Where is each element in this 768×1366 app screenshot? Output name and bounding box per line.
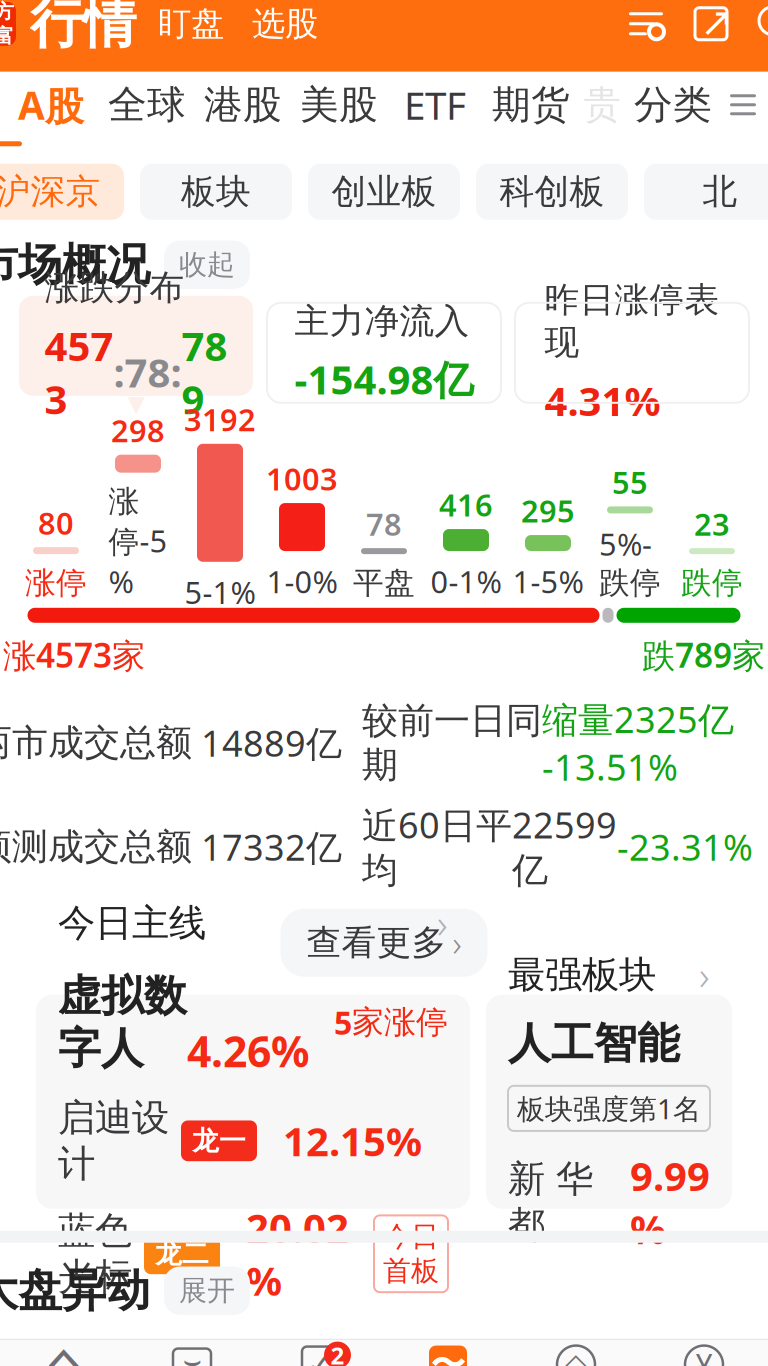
- staticText: 涨停: [25, 564, 87, 602]
- button[interactable]: 昨日涨停表现: [515, 303, 749, 403]
- staticText: 近60日平均: [362, 801, 512, 893]
- staticText: ▾: [127, 383, 144, 422]
- staticText: 78: [366, 503, 402, 544]
- button[interactable]: 板块: [140, 164, 292, 220]
- staticText: ¥: [695, 1343, 713, 1366]
- staticText: 1-0%: [266, 561, 337, 602]
- staticText: 295: [521, 490, 575, 531]
- staticText: 4.26%: [187, 966, 309, 1079]
- button[interactable]: 科创板: [476, 164, 628, 220]
- staticText: 9.99%: [630, 1149, 710, 1255]
- staticText: :: [113, 345, 124, 399]
- button[interactable]: 选股: [242, 0, 328, 50]
- button[interactable]: 沪深京: [0, 164, 124, 220]
- button[interactable]: 港股: [195, 80, 291, 130]
- staticText: ◇: [563, 1346, 588, 1366]
- staticText: 启迪设计: [58, 1095, 169, 1187]
- staticText: 缩量2325亿 -13.51%: [542, 695, 743, 791]
- staticText: 较前一日同期: [362, 699, 542, 787]
- button[interactable]: ⌣: [128, 1340, 256, 1366]
- button[interactable]: ETF: [387, 80, 483, 130]
- staticText: 选股: [252, 3, 318, 44]
- staticText: 78: [124, 345, 170, 399]
- button[interactable]: Filter settings: [626, 4, 666, 44]
- staticText: 80: [38, 502, 74, 543]
- staticText: :: [170, 345, 181, 399]
- staticText: 家涨停: [352, 1003, 448, 1042]
- staticText: ↗: [700, 0, 734, 44]
- staticText: 板块强度第1名: [517, 1090, 701, 1127]
- staticText: 2: [330, 1339, 344, 1366]
- button[interactable]: ◇: [512, 1340, 640, 1366]
- button[interactable]: Share: [666, 5, 730, 43]
- staticText: 新 华 都: [508, 1156, 593, 1248]
- staticText: 市场概况: [0, 238, 150, 292]
- staticText: 港股: [204, 81, 282, 128]
- staticText: 美股: [300, 81, 378, 128]
- staticText: -154.98亿: [294, 352, 473, 406]
- button[interactable]: 主力净流入: [267, 303, 501, 403]
- button[interactable]: 创业板: [308, 164, 460, 220]
- staticText: 涨4573家: [3, 633, 145, 677]
- staticText: 22599亿: [512, 801, 617, 893]
- staticText: 跌789家: [642, 633, 765, 677]
- staticText: 财富: [0, 24, 14, 48]
- staticText: 1-5%: [512, 561, 583, 602]
- button[interactable]: 大盘异动: [0, 1243, 768, 1339]
- staticText: 龙一: [192, 1124, 246, 1157]
- button[interactable]: ¥: [640, 1340, 768, 1366]
- staticText: 东方: [0, 0, 14, 24]
- button[interactable]: ✓: [256, 1340, 384, 1366]
- button[interactable]: Search: [730, 4, 768, 44]
- staticText: 两市成交总额: [0, 721, 192, 765]
- staticText: 今日主线: [58, 900, 206, 946]
- staticText: 1003: [266, 458, 338, 499]
- button[interactable]: 最强板块: [486, 995, 732, 1209]
- staticText: 大盘异动: [0, 1264, 150, 1318]
- staticText: ⌂: [44, 1330, 83, 1366]
- staticText: 416: [439, 484, 493, 525]
- staticText: 4573: [44, 319, 113, 425]
- button[interactable]: 全球: [99, 80, 195, 130]
- staticText: ETF: [404, 79, 466, 130]
- button[interactable]: 〜: [384, 1340, 512, 1366]
- staticText: 涨跌分布: [44, 266, 184, 309]
- staticText: 4.31%: [544, 374, 660, 427]
- staticText: 北: [702, 170, 737, 213]
- button[interactable]: 盯盘: [148, 0, 234, 50]
- staticText: ⌣: [182, 1347, 201, 1366]
- staticText: 3192: [184, 399, 256, 440]
- staticText: 789: [181, 319, 227, 425]
- button[interactable]: More categories: [721, 83, 765, 127]
- staticText: ✓: [305, 1345, 334, 1366]
- button[interactable]: 分类: [625, 80, 721, 130]
- button[interactable]: 市场概况: [0, 234, 768, 296]
- button[interactable]: 美股: [291, 80, 387, 130]
- staticText: 5%-跌停: [599, 523, 661, 602]
- staticText: 14889亿: [192, 719, 342, 767]
- staticText: 收起: [179, 248, 235, 282]
- staticText: A股: [18, 79, 84, 130]
- staticText: 平盘: [353, 564, 415, 602]
- staticText: 0-1%: [430, 561, 501, 602]
- staticText: 12.15%: [283, 1114, 422, 1167]
- button[interactable]: 期货: [483, 80, 579, 130]
- staticText: 20.02%: [246, 1201, 349, 1307]
- button[interactable]: ⌂: [0, 1340, 128, 1366]
- button[interactable]: 查看更多: [280, 909, 487, 977]
- staticText: 展开: [179, 1273, 235, 1308]
- staticText: 最强板块: [508, 952, 656, 998]
- button[interactable]: 今日主线: [36, 995, 470, 1209]
- staticText: 虚拟数字人: [58, 970, 187, 1075]
- staticText: 跌停: [681, 564, 743, 602]
- button[interactable]: A股: [3, 80, 99, 130]
- staticText: 龙二: [155, 1237, 209, 1270]
- staticText: 行情: [30, 0, 136, 56]
- staticText: ›: [437, 896, 448, 950]
- staticText: 5-1%: [184, 572, 255, 612]
- staticText: 涨停-5%: [108, 483, 167, 602]
- button[interactable]: 北: [644, 164, 768, 220]
- staticText: 板块: [181, 170, 251, 213]
- staticText: 〜: [430, 1343, 465, 1366]
- staticText: 昨日涨停表现: [544, 279, 719, 364]
